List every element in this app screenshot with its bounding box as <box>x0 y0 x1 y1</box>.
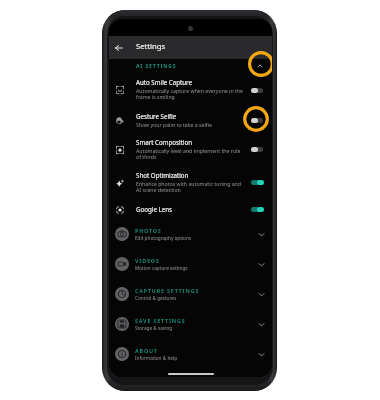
staticText: AI SETTINGS <box>136 63 177 70</box>
button[interactable]: Auto Smile Capture <box>109 73 272 106</box>
staticText: PHOTOS <box>135 227 162 234</box>
button[interactable]: Shot Optimization <box>109 165 272 199</box>
staticText: Automatically level and implement the ru… <box>136 147 244 161</box>
staticText: Smart Composition <box>136 138 192 146</box>
button[interactable]: AI Settings section <box>109 59 272 73</box>
button[interactable]: Auto Smile Capture toggle <box>249 82 265 98</box>
staticText: SAVE SETTINGS <box>135 317 186 324</box>
staticText: Information & help <box>135 355 178 361</box>
button[interactable]: Smart Composition <box>109 133 272 165</box>
staticText: Control & gestures <box>135 295 177 301</box>
staticText: Show your palm to take a selfie <box>136 121 212 128</box>
staticText: Edit photography options <box>135 235 192 241</box>
button[interactable]: Expand ABOUT <box>253 346 269 362</box>
button[interactable]: Gesture Selfie toggle <box>249 112 265 128</box>
button[interactable]: PHOTOS <box>109 219 272 249</box>
staticText: Enhance photos with automatic tuning and… <box>136 180 244 194</box>
staticText: Shot Optimization <box>136 171 189 179</box>
button[interactable]: ABOUT <box>109 339 272 369</box>
button[interactable]: Gesture Selfie <box>109 106 272 133</box>
button[interactable]: Expand PHOTOS <box>253 226 269 242</box>
staticText: Automatically capture when everyone in t… <box>136 87 244 101</box>
button[interactable]: SAVE SETTINGS <box>109 309 272 339</box>
button[interactable]: Google Lens toggle <box>249 201 265 217</box>
staticText: Motion capture settings <box>135 265 188 271</box>
button[interactable]: Shot Optimization toggle <box>249 174 265 190</box>
button[interactable]: Expand CAPTURE SETTINGS <box>253 286 269 302</box>
button[interactable]: Back <box>110 39 127 56</box>
button[interactable]: Expand SAVE SETTINGS <box>253 316 269 332</box>
button[interactable]: CAPTURE SETTINGS <box>109 279 272 309</box>
staticText: CAPTURE SETTINGS <box>135 287 200 294</box>
staticText: ABOUT <box>135 347 158 354</box>
button[interactable]: Expand VIDEOS <box>253 256 269 272</box>
staticText: VIDEOS <box>135 257 160 264</box>
button[interactable]: Smart Composition toggle <box>249 141 265 157</box>
staticText: Storage & saving <box>135 325 173 331</box>
staticText: Google Lens <box>136 205 173 213</box>
staticText: Auto Smile Capture <box>136 78 193 86</box>
button[interactable]: VIDEOS <box>109 249 272 279</box>
button[interactable]: Collapse AI settings <box>252 59 268 73</box>
staticText: Gesture Selfie <box>136 112 177 120</box>
staticText: Settings <box>136 41 166 51</box>
button[interactable]: Google Lens <box>109 199 272 219</box>
